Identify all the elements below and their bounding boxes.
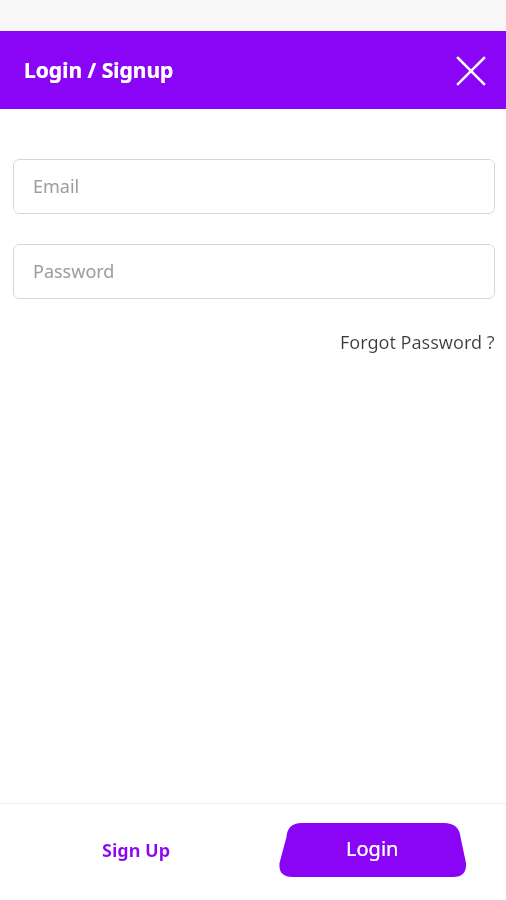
- staticText: Forgot Password ?: [340, 330, 495, 355]
- staticText: Login / Signup: [24, 56, 174, 85]
- staticText: Login: [346, 835, 399, 862]
- staticText: Sign Up: [102, 838, 171, 863]
- button[interactable]: Email: [13, 159, 495, 214]
- button[interactable]: Sign Up: [102, 838, 171, 863]
- button[interactable]: Password: [13, 244, 495, 299]
- button[interactable]: Login: [274, 821, 470, 879]
- staticText: Email: [33, 174, 80, 199]
- button[interactable]: Close: [448, 47, 494, 93]
- button[interactable]: Forgot Password ?: [340, 330, 495, 355]
- staticText: Password: [33, 259, 115, 284]
